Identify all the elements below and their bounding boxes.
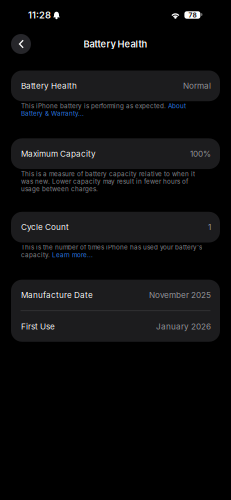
staticText: 100% [190, 149, 211, 159]
staticText: Normal [183, 81, 211, 91]
button[interactable]: Manufacture Date [11, 280, 220, 310]
staticText: 1 [208, 222, 211, 232]
staticText: Battery Health [21, 81, 77, 91]
button[interactable]: First Use [11, 311, 220, 342]
staticText: This is the number of times iPhone has u… [21, 243, 202, 259]
staticText: This iPhone battery is performing as exp… [21, 102, 186, 117]
staticText: November 2025 [149, 290, 211, 300]
button[interactable]: Back [11, 34, 31, 54]
staticText: Cycle Count [21, 222, 69, 232]
button[interactable]: Battery Health [11, 70, 220, 101]
staticText: 11:28 [28, 9, 51, 21]
staticText: Maximum Capacity [21, 149, 96, 159]
staticText: Manufacture Date [21, 290, 93, 300]
staticText: First Use [21, 321, 55, 331]
staticText: January 2026 [156, 321, 211, 331]
staticText: Battery Health [83, 38, 147, 50]
button[interactable]: Cycle Count [11, 212, 220, 242]
button[interactable]: Maximum Capacity [11, 138, 220, 169]
staticText: 78 [188, 11, 196, 19]
staticText: This is a measure of battery capacity re… [21, 170, 195, 193]
